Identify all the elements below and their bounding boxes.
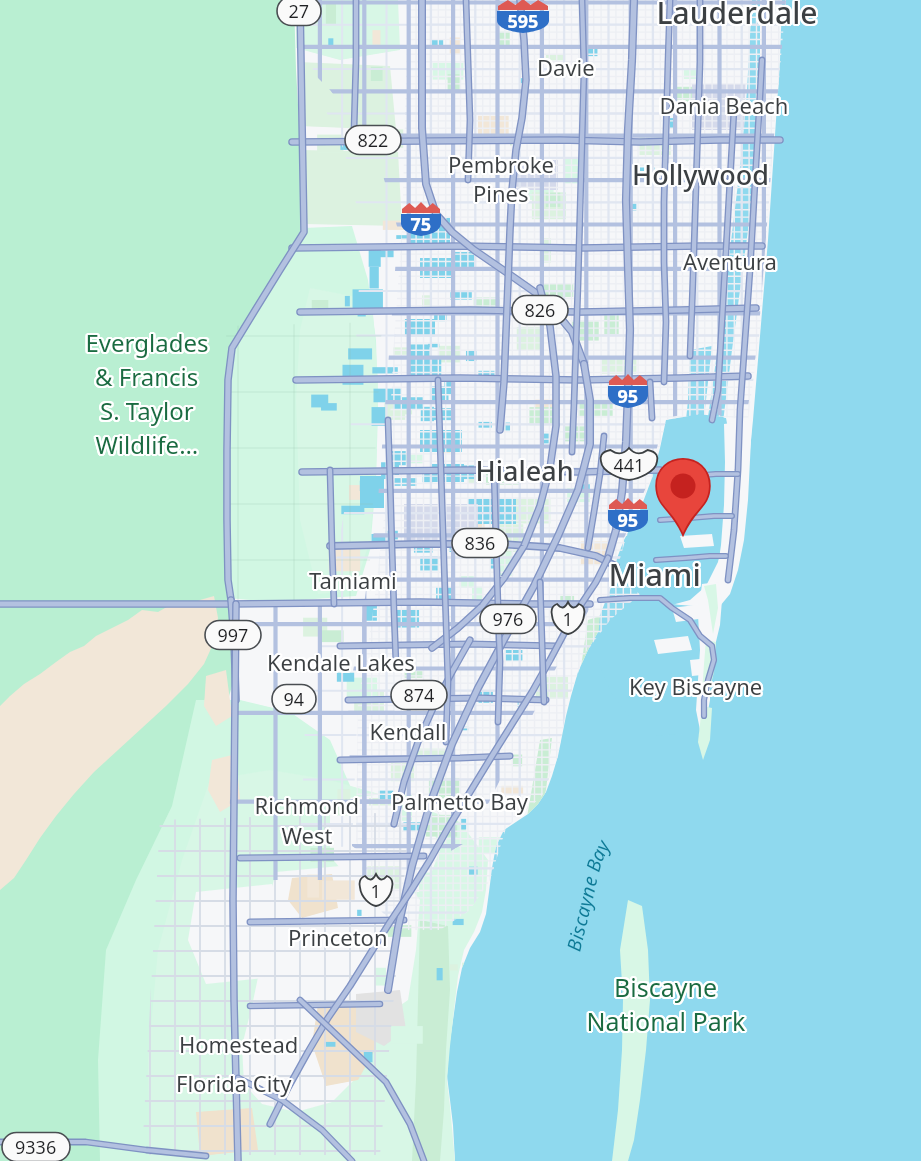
button[interactable]: Selected location marker, Miami xyxy=(653,456,713,536)
button[interactable]: Map of Miami and South Florida xyxy=(0,0,921,1161)
